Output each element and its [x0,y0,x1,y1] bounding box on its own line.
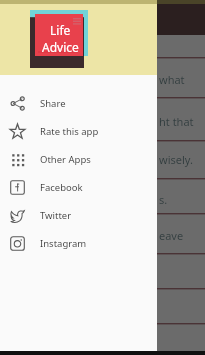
button[interactable]: Twitter [0,201,157,229]
staticText: Advice [42,39,79,55]
button[interactable]: Instagram [0,229,157,257]
other: Other Apps [9,151,26,168]
other: Twitter [9,207,26,224]
staticText: what [159,72,185,87]
button[interactable]: Share [0,89,157,117]
button[interactable]: Facebook [0,173,157,201]
button[interactable]: Other Apps [0,145,157,173]
button[interactable]: Rate this app [0,117,157,145]
other: Rate this app [9,123,26,140]
staticText: Facebook [40,181,83,194]
staticText: ht that [159,114,194,129]
other: Facebook [9,179,26,196]
staticText: Life [50,22,71,38]
staticText: Other Apps [40,153,91,166]
staticText: s. [159,192,168,207]
staticText: Share [40,97,66,110]
staticText: Rate this app [40,125,99,138]
staticText: Twitter [40,209,72,222]
other: Instagram [9,235,26,252]
staticText: wisely. [159,152,193,167]
staticText: eave [159,228,184,243]
other: Share [9,95,26,112]
staticText: Instagram [40,237,87,250]
